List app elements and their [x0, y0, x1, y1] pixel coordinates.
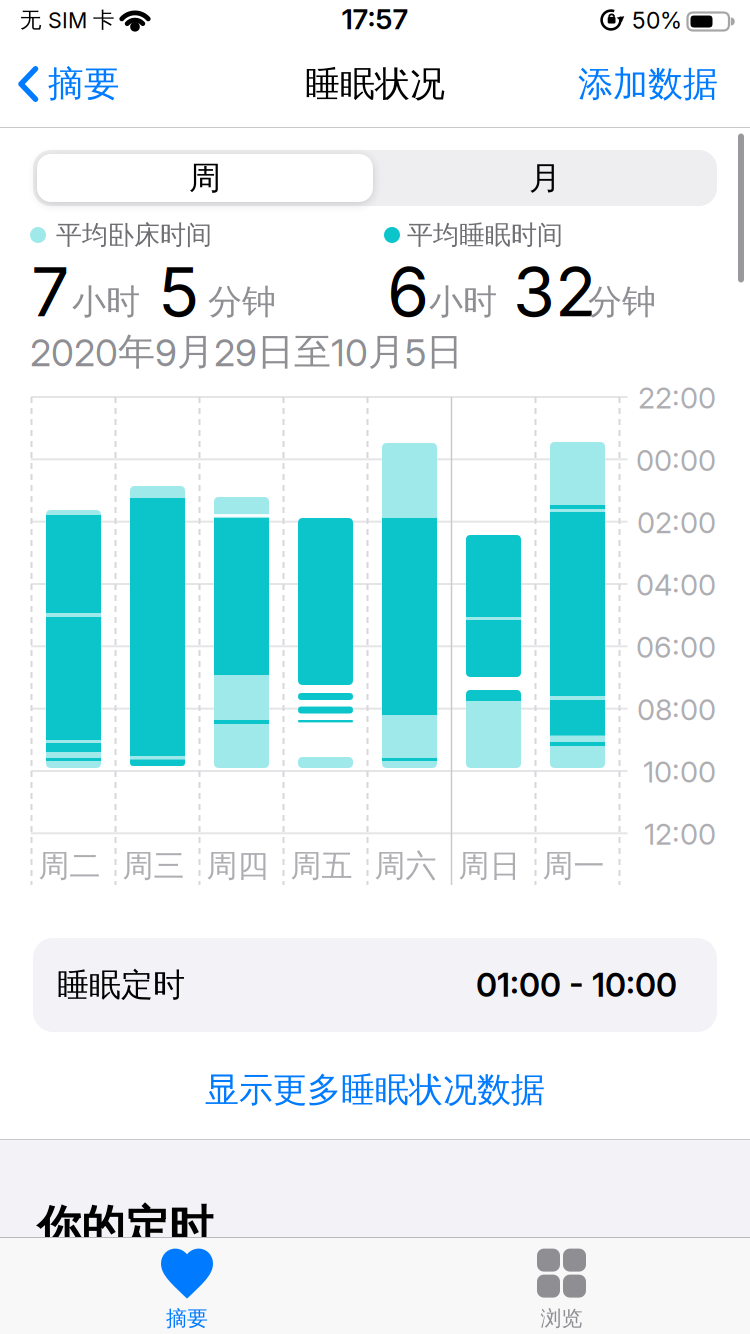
staticText: 周一 — [542, 847, 604, 885]
button[interactable]: 显示更多睡眠状况数据 — [205, 1069, 545, 1111]
staticText: 04:00 — [636, 568, 716, 602]
staticText: 06:00 — [636, 630, 716, 664]
staticText: 50% — [632, 7, 682, 34]
staticText: 摘要 — [166, 1306, 208, 1331]
staticText: 周四 — [206, 847, 268, 885]
staticText: 01:00 - 10:00 — [476, 966, 677, 1004]
staticText: 周三 — [122, 847, 184, 885]
staticText: 32 — [513, 251, 596, 332]
button[interactable]: 周 — [37, 154, 373, 202]
staticText: 睡眠状况 — [305, 62, 445, 105]
staticText: 平均睡眠时间 — [407, 219, 563, 251]
staticText: 17:57 — [341, 2, 408, 35]
staticText: 5 — [158, 251, 199, 332]
staticText: 02:00 — [637, 506, 716, 540]
staticText: 6 — [387, 251, 429, 332]
button[interactable]: 睡眠定时 — [33, 938, 717, 1032]
staticText: 摘要 — [48, 62, 120, 106]
staticText: 分钟 — [588, 281, 656, 323]
staticText: 平均卧床时间 — [56, 219, 212, 251]
staticText: 周 — [189, 158, 221, 198]
staticText: 22:00 — [638, 381, 716, 415]
staticText: 周五 — [290, 847, 352, 885]
staticText: 08:00 — [637, 692, 716, 727]
staticText: 你的定时 — [37, 1200, 213, 1254]
staticText: 10:00 — [643, 755, 716, 789]
staticText: 12:00 — [644, 817, 716, 851]
staticText: 分钟 — [208, 281, 276, 323]
staticText: 浏览 — [540, 1306, 582, 1331]
staticText: 00:00 — [636, 443, 716, 477]
staticText: 周二 — [38, 847, 100, 885]
button[interactable]: 摘要 — [18, 62, 120, 106]
staticText: 月 — [529, 158, 561, 198]
staticText: 显示更多睡眠状况数据 — [205, 1069, 545, 1111]
button[interactable]: 添加数据 — [578, 62, 718, 105]
staticText: 睡眠定时 — [57, 965, 185, 1005]
button[interactable]: 浏览 — [537, 1249, 586, 1331]
staticText: 添加数据 — [578, 62, 718, 105]
staticText: 2020年9月29日至10月5日 — [30, 329, 463, 375]
staticText: 周日 — [458, 847, 520, 885]
staticText: 周六 — [374, 847, 436, 885]
button[interactable]: 摘要 — [161, 1249, 213, 1331]
staticText: 小时 — [72, 281, 140, 323]
staticText: 无 SIM 卡 — [20, 7, 115, 33]
staticText: 小时 — [429, 281, 497, 323]
button[interactable]: 月 — [377, 154, 713, 202]
staticText: 7 — [31, 251, 69, 332]
